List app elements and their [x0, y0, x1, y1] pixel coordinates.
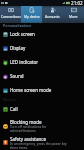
button[interactable]: Connections — [0, 6, 21, 23]
staticText: In an emergency, press the power key thr… — [10, 142, 67, 149]
staticText: Personalization — [3, 23, 84, 27]
button[interactable]: Lock screen — [0, 27, 84, 41]
staticText: More — [69, 14, 78, 19]
button[interactable]: Safety assistance — [0, 136, 84, 149]
staticText: Home screen mode — [10, 87, 52, 93]
staticText: LED indicator — [10, 59, 39, 65]
button[interactable]: More — [63, 6, 84, 23]
button[interactable]: LED indicator — [0, 55, 84, 69]
staticText: Motion — [3, 97, 84, 102]
staticText: Accounts — [45, 14, 60, 19]
staticText: Blocking mode — [10, 119, 42, 125]
staticText: 21:02 — [71, 0, 83, 6]
button[interactable]: Blocking mode — [0, 116, 84, 136]
button[interactable]: Display — [0, 41, 84, 55]
button[interactable]: Home screen mode — [0, 83, 84, 97]
staticText: Lock screen — [10, 31, 35, 37]
button[interactable]: Sound — [0, 69, 84, 83]
staticText: Connections — [1, 14, 21, 19]
staticText: Call — [10, 106, 18, 112]
button[interactable]: Accounts — [42, 6, 63, 23]
staticText: Safety assistance — [10, 136, 46, 142]
staticText: My device — [24, 14, 40, 19]
button[interactable]: My device — [21, 6, 42, 23]
button[interactable]: Call — [0, 102, 84, 116]
staticText: Display — [10, 45, 26, 51]
staticText: Sound — [10, 73, 24, 79]
staticText: Turn off notifications for selected feat… — [10, 125, 47, 133]
